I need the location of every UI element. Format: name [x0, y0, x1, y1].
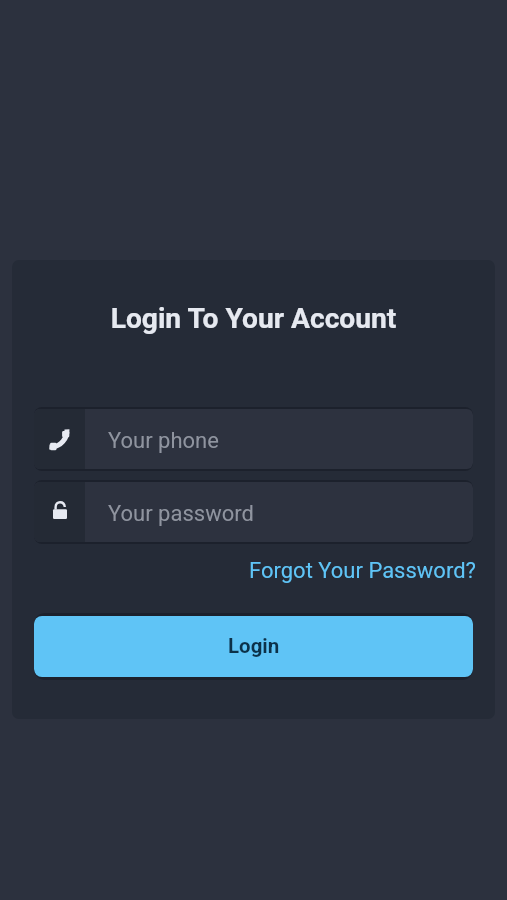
staticText: Login To Your Account	[34, 302, 473, 335]
button[interactable]: Password	[34, 482, 473, 542]
staticText: Login	[228, 634, 280, 658]
staticText: Forgot Your Password?	[249, 558, 476, 584]
button[interactable]: Forgot Your Password?	[249, 558, 476, 584]
other: Password	[53, 501, 67, 523]
staticText: Your password	[108, 501, 254, 527]
staticText: Your phone	[108, 428, 219, 454]
button[interactable]: Phone	[34, 409, 473, 469]
other: Phone	[50, 431, 69, 453]
button[interactable]: Login	[34, 616, 473, 677]
